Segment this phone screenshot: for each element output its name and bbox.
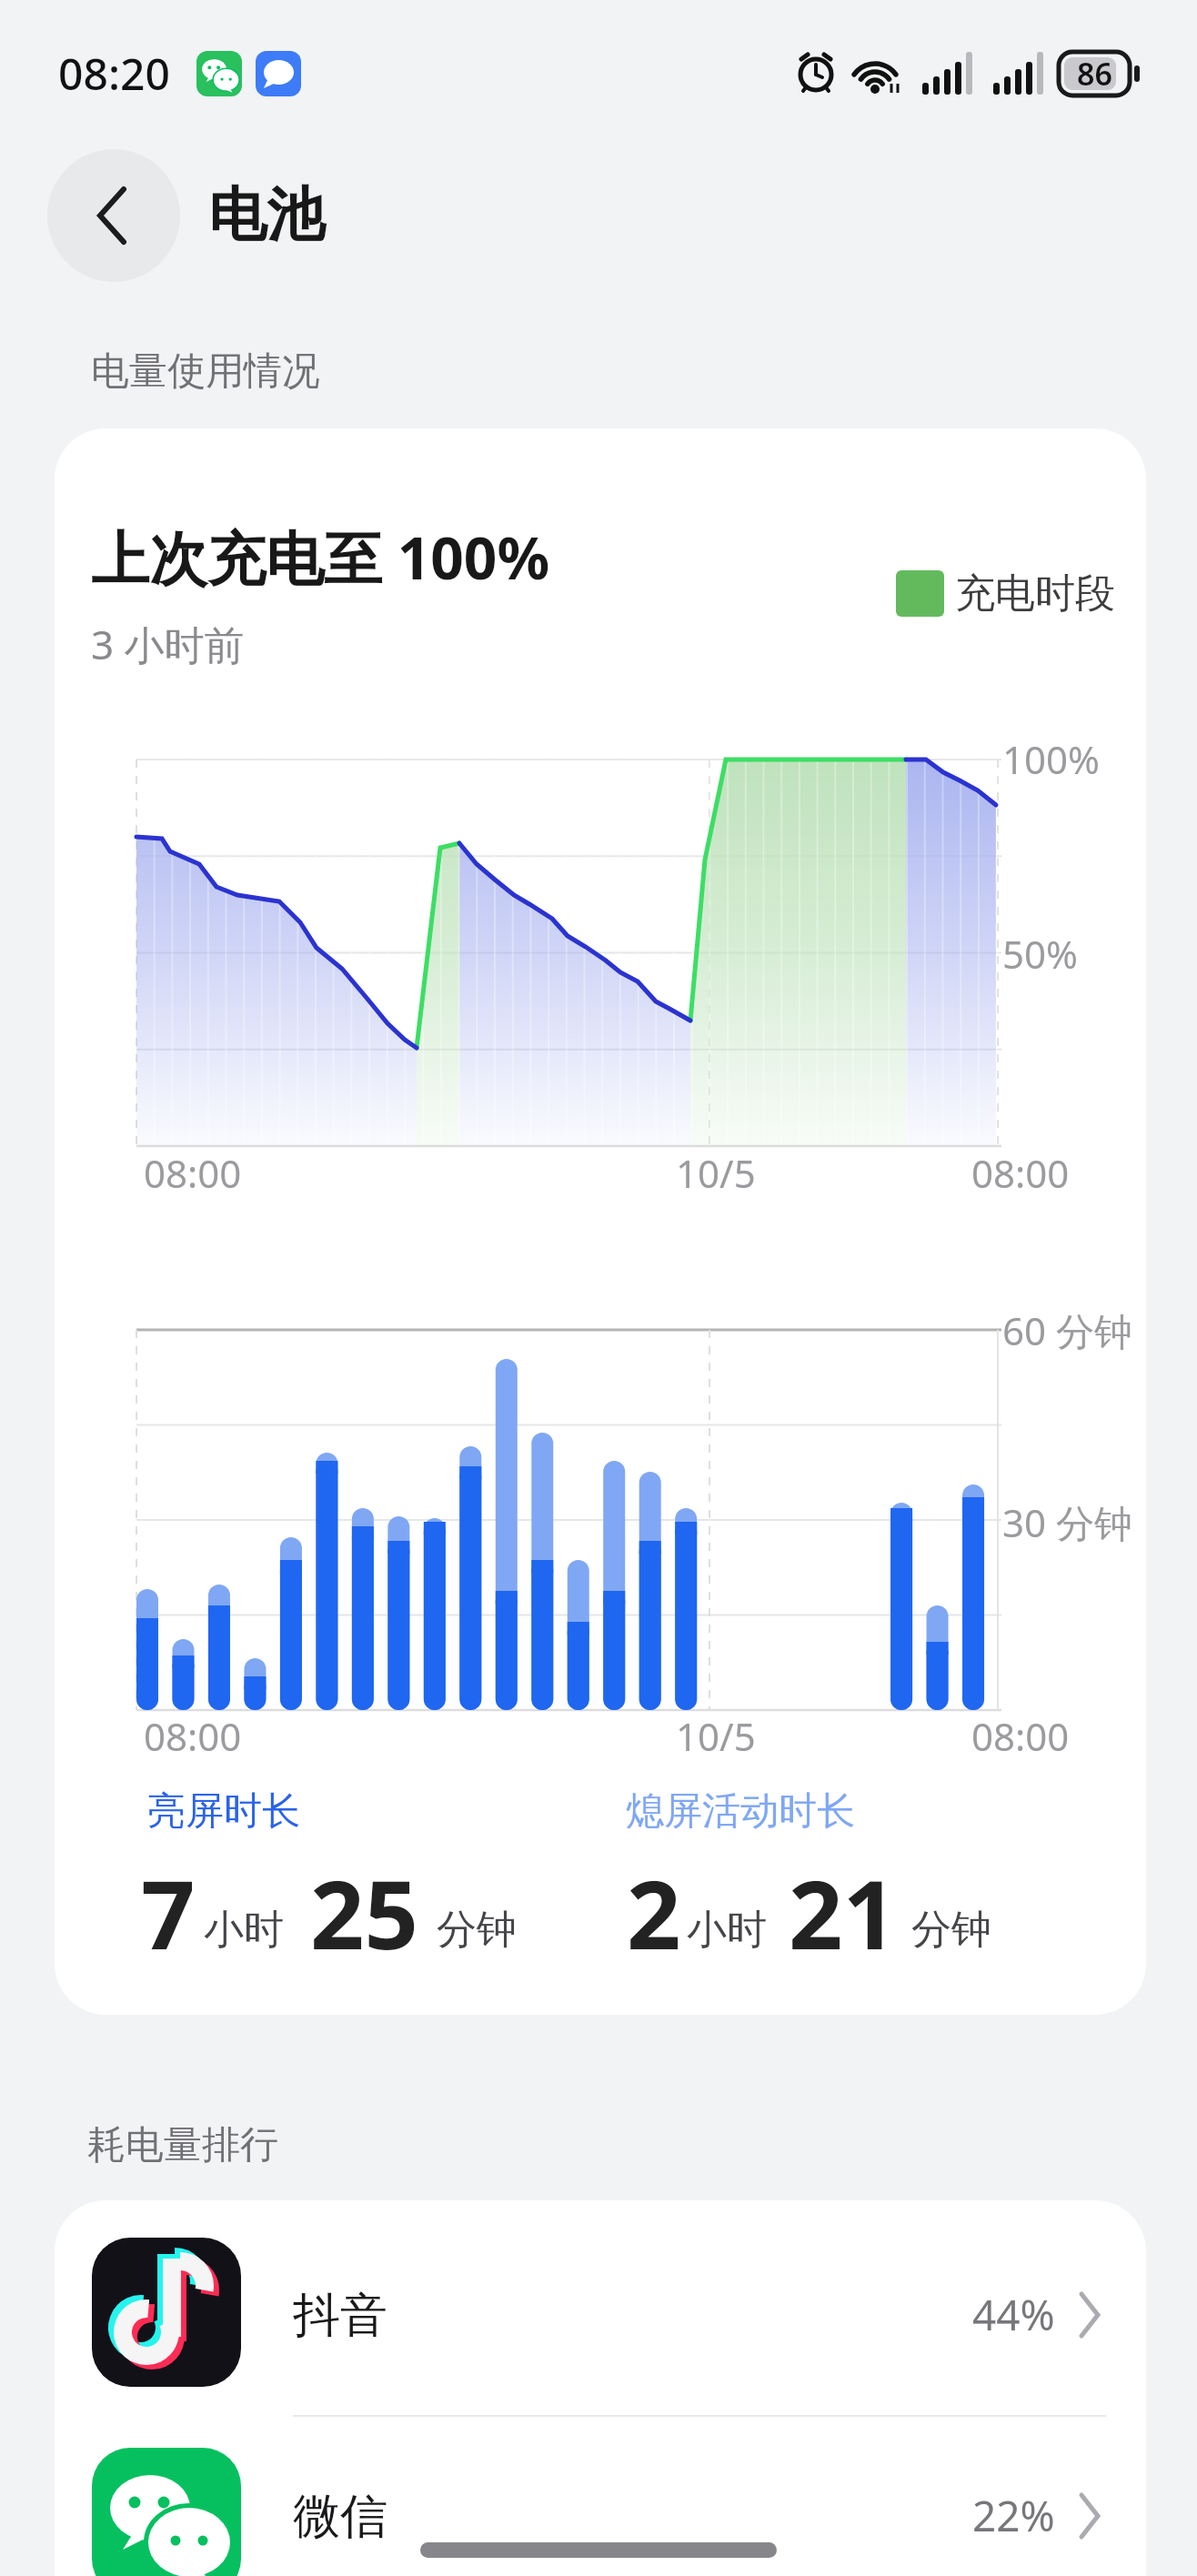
staticText: 60 分钟 (1002, 1304, 1132, 1356)
staticText: 2 (627, 1848, 681, 1976)
button[interactable] (55, 2417, 1146, 2576)
staticText: 分钟 (437, 1905, 517, 1955)
staticText: 100% (1002, 733, 1100, 785)
staticText: 耗电量排行 (87, 2121, 278, 2169)
staticText: 08:00 (144, 1710, 242, 1762)
staticText: 86 (1077, 53, 1112, 95)
staticText: 08:20 (58, 44, 170, 103)
staticText: 熄屏活动时长 (626, 1787, 855, 1836)
staticText: 抖音 (293, 2286, 387, 2346)
staticText: 小时 (204, 1905, 284, 1955)
staticText: 21 (789, 1848, 897, 1976)
staticText: 7 (141, 1848, 196, 1976)
staticText: 08:00 (144, 1147, 242, 1199)
staticText: 44% (972, 2286, 1055, 2343)
staticText: 电池 (208, 178, 325, 252)
staticText: 10/5 (676, 1147, 756, 1199)
staticText: 亮屏时长 (147, 1787, 300, 1836)
staticText: 30 分钟 (1002, 1496, 1132, 1548)
button[interactable] (55, 2200, 1146, 2416)
staticText: 分钟 (911, 1905, 991, 1955)
staticText: 10/5 (676, 1710, 756, 1762)
staticText: 充电时段 (955, 569, 1115, 619)
staticText: 08:00 (971, 1147, 1070, 1199)
staticText: 08:00 (971, 1710, 1070, 1762)
staticText: 50% (1002, 928, 1078, 980)
staticText: 微信 (293, 2487, 387, 2547)
staticText: 3 小时前 (91, 617, 245, 671)
button[interactable] (47, 149, 180, 282)
staticText: 小时 (687, 1905, 767, 1955)
staticText: 上次充电至 100% (91, 518, 550, 597)
staticText: 22% (972, 2487, 1055, 2544)
staticText: 电量使用情况 (91, 347, 320, 396)
staticText: 25 (310, 1848, 418, 1976)
